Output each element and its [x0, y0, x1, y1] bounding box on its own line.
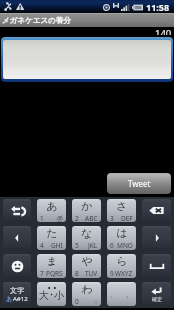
staticText: 7: [40, 269, 44, 278]
button[interactable]: 大･小: [37, 282, 66, 306]
staticText: ABC: [85, 214, 98, 222]
button[interactable]: [3, 40, 171, 79]
staticText: A#12: [13, 295, 28, 303]
staticText: 、: [110, 291, 117, 299]
button[interactable]: Backspace: [142, 199, 171, 222]
staticText: 140: [155, 27, 172, 35]
button[interactable]: Undo: [3, 199, 31, 222]
staticText: JKL: [88, 241, 98, 250]
button[interactable]: Enter: [142, 282, 171, 306]
button[interactable]: Tweet: [107, 173, 171, 194]
staticText: -: [95, 297, 98, 306]
staticText: 。: [126, 291, 133, 299]
button[interactable]: 文字: [3, 282, 31, 306]
staticText: ま: [46, 254, 58, 268]
staticText: @: [57, 214, 63, 222]
staticText: か: [81, 199, 93, 213]
button[interactable]: あ: [37, 199, 66, 222]
staticText: 1: [40, 214, 44, 222]
staticText: DEF: [121, 214, 133, 222]
staticText: 6: [110, 241, 114, 250]
staticText: 確定: [152, 296, 162, 302]
staticText: わ: [81, 282, 93, 296]
staticText: 3: [110, 214, 114, 222]
button[interactable]: ら: [107, 254, 136, 278]
staticText: 大･小: [39, 289, 64, 302]
staticText: 2: [75, 214, 79, 222]
staticText: さ: [116, 199, 128, 213]
button[interactable]: Emoji: [3, 254, 31, 278]
button[interactable]: Space: [142, 254, 171, 278]
staticText: TUV: [85, 269, 98, 278]
button[interactable]: 、: [107, 282, 136, 306]
button[interactable]: な: [72, 226, 101, 250]
button[interactable]: さ: [107, 199, 136, 222]
staticText: は: [116, 226, 128, 240]
staticText: 文字: [10, 286, 24, 295]
button[interactable]: か: [72, 199, 101, 222]
button[interactable]: Cursor right: [142, 226, 171, 250]
button[interactable]: や: [72, 254, 101, 278]
button[interactable]: は: [107, 226, 136, 250]
staticText: GHI: [51, 241, 63, 250]
button[interactable]: Cursor left: [3, 226, 31, 250]
staticText: や: [81, 254, 93, 268]
staticText: 8: [75, 269, 79, 278]
button[interactable]: ま: [37, 254, 66, 278]
staticText: Tweet: [128, 178, 151, 189]
button[interactable]: わ: [72, 282, 101, 306]
staticText: MNO: [117, 241, 133, 250]
staticText: た: [46, 226, 58, 240]
staticText: 5: [75, 241, 79, 250]
staticText: あ: [46, 199, 58, 213]
staticText: 9: [110, 269, 114, 278]
staticText: 0: [75, 297, 79, 306]
staticText: ら: [116, 254, 128, 268]
staticText: メガネケエスの養分: [2, 16, 71, 25]
staticText: 11:58: [146, 1, 170, 13]
staticText: PQRS: [46, 269, 63, 278]
staticText: あ: [6, 295, 13, 303]
button[interactable]: た: [37, 226, 66, 250]
staticText: 4: [40, 241, 44, 250]
staticText: WXYZ: [115, 269, 133, 278]
staticText: な: [81, 226, 93, 240]
